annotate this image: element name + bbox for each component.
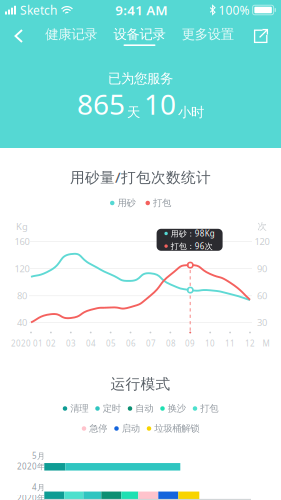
staticText: 865 [77,85,125,123]
staticText: 用砂量/打包次数统计 [70,167,211,187]
button[interactable]: 设备记录 [110,21,168,51]
staticText: 用砂：98Kg [171,228,215,239]
staticText: 03 [66,338,76,349]
staticText: 120 [254,235,269,248]
staticText: 已为您服务 [108,70,173,87]
staticText: 120 [14,262,29,275]
staticText: M [262,338,269,349]
staticText: 2020年 [17,492,45,500]
staticText: 2020年 [17,461,45,472]
staticText: 小时 [178,104,204,121]
staticText: 健康记录 [45,26,97,42]
staticText: 02 [46,338,56,349]
staticText: 07 [146,338,156,349]
staticText: 4月 [32,482,45,492]
staticText: 06 [126,338,136,349]
staticText: 打包：96次 [171,241,213,251]
button[interactable]: 健康记录 [42,21,100,51]
staticText: 9:41 AM [115,1,167,19]
staticText: 自动 [135,403,153,414]
button[interactable]: 更多设置 [179,21,237,51]
staticText: 5月 [32,450,45,461]
staticText: 更多设置 [182,26,234,42]
staticText: 10 [205,338,215,349]
staticText: 天 [127,104,140,121]
button[interactable]: Share [247,21,275,51]
staticText: 运行模式 [110,375,170,393]
staticText: 打包 [200,403,218,414]
staticText: 设备记录 [113,26,165,42]
staticText: 用砂 [117,197,135,209]
staticText: 急停 [89,423,107,434]
staticText: Sketch [20,2,57,18]
staticText: 100% [219,2,250,18]
staticText: 60 [257,289,267,302]
staticText: 40 [17,316,27,329]
staticText: 清理 [70,403,88,414]
staticText: 04 [86,338,96,349]
staticText: 90 [257,262,267,275]
staticText: 08 [166,338,176,349]
staticText: 垃圾桶解锁 [154,423,199,434]
staticText: 定时 [103,403,121,414]
staticText: 10 [144,85,176,123]
staticText: 09 [185,338,195,349]
staticText: 160 [14,235,29,248]
button[interactable]: Back [6,21,32,51]
staticText: Kg [16,220,28,233]
staticText: 80 [17,289,27,302]
staticText: 打包 [153,197,171,209]
staticText: 换沙 [168,403,186,414]
staticText: 12 [245,338,255,349]
staticText: 05 [106,338,116,349]
staticText: 2020 01 [11,338,43,349]
staticText: 次 [257,221,266,232]
staticText: 启动 [122,423,140,434]
staticText: 11 [225,338,235,349]
staticText: 30 [257,316,267,329]
